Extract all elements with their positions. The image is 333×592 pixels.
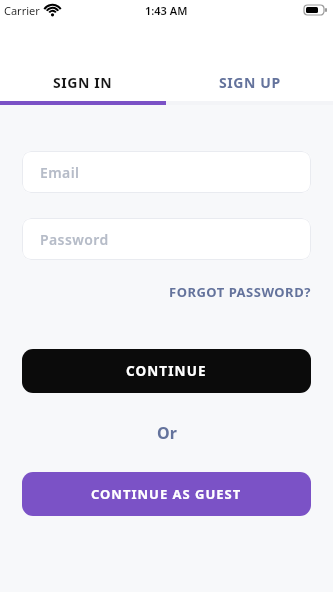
button[interactable]: Password bbox=[22, 218, 311, 260]
staticText: 1:43 AM bbox=[145, 3, 188, 18]
button[interactable]: SIGN IN bbox=[0, 63, 166, 101]
staticText: Password bbox=[40, 230, 109, 249]
button[interactable]: SIGN UP bbox=[166, 63, 333, 101]
staticText: SIGN UP bbox=[219, 73, 281, 92]
staticText: Email bbox=[40, 163, 80, 182]
staticText: Or bbox=[157, 422, 177, 444]
staticText: Carrier bbox=[4, 3, 40, 18]
staticText: SIGN IN bbox=[53, 73, 113, 92]
button[interactable]: CONTINUE AS GUEST bbox=[22, 472, 311, 516]
button[interactable]: FORGOT PASSWORD? bbox=[169, 283, 311, 301]
staticText: CONTINUE bbox=[126, 362, 207, 380]
button[interactable]: Email bbox=[22, 151, 311, 193]
staticText: CONTINUE AS GUEST bbox=[91, 485, 242, 503]
staticText: FORGOT PASSWORD? bbox=[169, 283, 311, 301]
button[interactable]: CONTINUE bbox=[22, 349, 311, 393]
